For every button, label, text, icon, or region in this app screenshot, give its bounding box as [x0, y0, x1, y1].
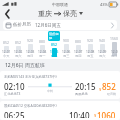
staticText: 12月6日周五 — [35, 22, 61, 28]
staticText: 凤凰机场 — [75, 92, 88, 96]
staticText: 920 — [27, 38, 33, 43]
staticText: 12-02 — [14, 50, 23, 54]
staticText: 周四 — [75, 54, 82, 58]
staticText: 保亮 — [63, 9, 77, 18]
button[interactable]: 940 — [96, 31, 108, 59]
button[interactable]: 880 — [36, 31, 48, 59]
staticText: 852 — [3, 40, 9, 45]
staticText: 中国联通 — [52, 2, 68, 7]
staticText: 周二 — [51, 54, 58, 58]
staticText: 12-07 — [74, 50, 83, 54]
staticText: 周六 — [99, 54, 106, 58]
staticText: 1560 — [110, 36, 118, 41]
staticText: 880 — [39, 39, 45, 44]
button[interactable]: 880 — [72, 31, 84, 59]
staticText: 东航MU5143 东方复兴机型737(中) — [4, 74, 57, 79]
staticText: 周六 — [15, 54, 22, 58]
staticText: 周日 — [27, 54, 34, 58]
staticText: 12-0 — [111, 50, 118, 54]
button[interactable]: 低价提醒 — [48, 31, 60, 59]
staticText: 国航CA4512 空客A320机型320(中) — [4, 103, 57, 108]
button[interactable]: Back — [0, 8, 14, 19]
button[interactable]: 852 — [0, 31, 12, 59]
staticText: 02:10 — [4, 81, 25, 92]
staticText: 周三 — [63, 54, 70, 58]
staticText: 重庆 — [38, 9, 52, 18]
button[interactable]: 低价月历 — [3, 20, 117, 30]
staticText: 中转 — [47, 89, 53, 93]
button[interactable]: 920 — [24, 31, 36, 59]
button[interactable]: 852 — [12, 31, 24, 59]
staticText: 940 — [99, 38, 105, 43]
staticText: 852 — [102, 81, 116, 92]
button[interactable]: 重庆 — [38, 9, 83, 18]
staticText: 12-06 — [62, 50, 71, 54]
staticText: 12月6日 周五航班 — [5, 62, 45, 69]
staticText: 852 — [51, 42, 57, 47]
staticText: 周五 — [87, 54, 94, 58]
staticText: 江北机场T3 — [4, 92, 21, 96]
staticText: 12-04 — [38, 50, 47, 54]
staticText: 12-03 — [26, 50, 35, 54]
staticText: 1060 — [97, 110, 116, 118]
button[interactable]: 1560 — [108, 31, 120, 59]
staticText: 852 — [15, 40, 21, 45]
staticText: 880 — [75, 39, 81, 44]
staticText: 周一 — [39, 54, 46, 58]
staticText: 12-01 — [2, 50, 11, 54]
button[interactable]: 920 — [84, 31, 96, 59]
staticText: ¥ — [99, 87, 102, 92]
staticText: 周日 — [111, 54, 118, 58]
staticText: 900 — [63, 38, 69, 43]
staticText: 经济舱 — [107, 92, 116, 96]
staticText: 12-09 — [98, 50, 107, 54]
staticText: 920 — [87, 38, 93, 43]
staticText: 低价提醒 — [49, 32, 59, 40]
button[interactable]: 东航MU5143 东方复兴机型737(中) — [0, 71, 120, 99]
staticText: 20:15 — [75, 81, 96, 92]
button[interactable]: 900 — [60, 31, 72, 59]
staticText: 10:40 — [69, 110, 90, 118]
staticText: 低价月历 — [13, 22, 31, 28]
staticText: 43% — [100, 2, 108, 7]
staticText: ¥ — [94, 113, 97, 118]
button[interactable]: 国航CA4512 空客A320机型320(中) — [0, 101, 120, 120]
staticText: 12-05 — [50, 50, 59, 54]
staticText: 12-08 — [86, 50, 95, 54]
staticText: 今天 — [3, 54, 10, 58]
staticText: 06:25 — [4, 110, 25, 118]
